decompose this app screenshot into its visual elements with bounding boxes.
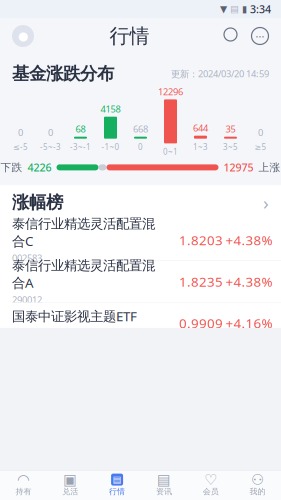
staticText: ▣ [63,471,77,488]
staticText: 泰信行业精选灵活配置混合C [12,216,155,250]
staticText: 1.3133 [179,480,223,498]
staticText: -5~-3 [40,142,61,152]
button[interactable]: ♡ [187,470,234,500]
staticText: -3~-1 [70,142,91,152]
button[interactable]: ◠ [0,470,47,500]
button[interactable]: ▤ [94,470,140,500]
staticText: 行情 [109,24,149,48]
staticText: 上涨 [258,161,280,174]
staticText: 会员 [203,487,219,496]
button[interactable]: ▣ [47,470,94,500]
staticText: 1.8203 [179,231,223,249]
staticText: 下跌 [0,161,22,174]
button[interactable]: 涨幅榜 [0,185,281,219]
staticText: ▼ [220,4,227,14]
staticText: ▤ [157,471,171,488]
staticText: ♡ [204,471,217,488]
button[interactable]: 搜索 [219,19,245,53]
staticText: +4.16% [225,314,272,332]
staticText: 1~3 [193,142,208,152]
staticText: 668 [133,123,148,135]
staticText: 0.9909 [179,314,223,332]
staticText: -1~0 [101,142,119,152]
staticText: 516620 [12,327,42,339]
staticText: 3:34 [250,2,271,16]
button[interactable]: 个人中心 [6,19,40,53]
staticText: 4158 [100,103,120,115]
staticText: 1.8235 [179,273,223,290]
staticText: › [263,190,269,215]
staticText: +4.38% [225,273,272,290]
staticText: 0~1 [163,146,178,157]
staticText: ▤ [230,4,239,14]
staticText: 资讯 [156,487,172,496]
button[interactable]: 泰信行业精选灵活配置混合A [0,261,281,302]
staticText: 泰信行业精选灵活配置混合A [12,257,155,291]
staticText: ▤ [113,474,122,485]
staticText: 0 [258,126,263,139]
staticText: 12296 [158,85,183,98]
staticText: -1.72% [227,480,270,498]
staticText: 涨幅榜 [12,192,63,213]
staticText: 644 [193,122,208,134]
staticText: 持有 [15,487,31,496]
staticText: 0 [48,126,53,139]
staticText: ◠ [17,471,30,488]
staticText: 0 [18,126,23,139]
staticText: 290012 [12,293,42,306]
staticText: 宝盈研究精选混合C [12,473,124,491]
button[interactable]: 泰信行业精选灵活配置混合C [0,219,281,260]
staticText: ⚇ [251,471,264,488]
button[interactable]: 宝盈研究精选混合C [0,469,281,500]
staticText: 35 [225,123,235,135]
staticText: ▮ [242,4,247,14]
staticText: 基金涨跌分布 [12,63,114,84]
staticText: 兑活 [62,487,78,496]
staticText: ··· [255,29,264,43]
staticText: 0 [138,142,143,152]
button[interactable]: ⚇ [234,470,281,500]
button[interactable]: 国泰中证影视主题ETF [0,303,281,344]
staticText: 我的 [250,487,266,496]
staticText: ≥5 [254,142,266,152]
staticText: 4226 [27,160,51,174]
button[interactable]: 更多 [245,19,275,53]
staticText: 国泰中证影视主题ETF [12,307,137,325]
staticText: 更新：2024/03/20 14:59 [171,67,269,80]
staticText: ≤-5 [13,142,28,152]
staticText: 行情 [109,487,125,496]
button[interactable]: ▤ [140,470,187,500]
staticText: ● [18,29,28,43]
staticText: 12975 [223,160,253,174]
staticText: +4.38% [225,231,272,249]
staticText: 002583 [12,252,42,264]
staticText: 3~5 [223,142,238,152]
staticText: 68 [75,123,85,135]
